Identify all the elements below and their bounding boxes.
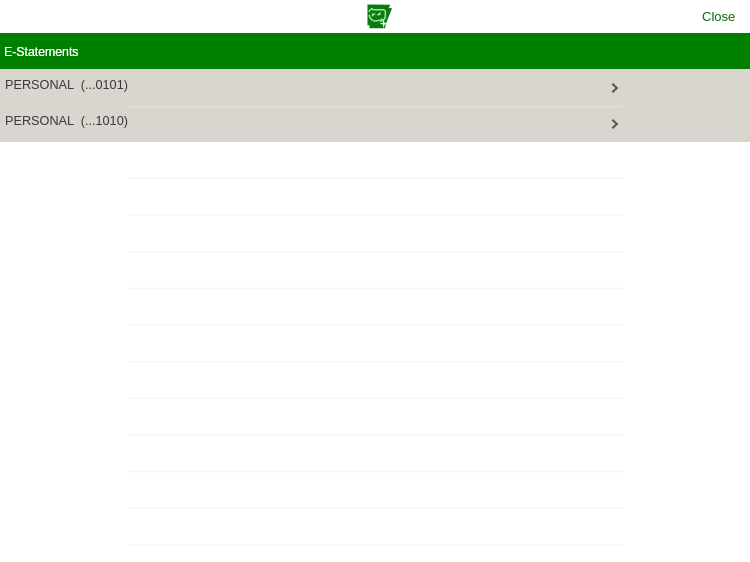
staticText: PERSONAL (...1010)	[5, 114, 128, 128]
staticText: Close	[702, 9, 736, 24]
staticText: Close	[702, 9, 736, 24]
staticText: E-Statements	[4, 45, 79, 59]
button[interactable]: PERSONAL (...0101)	[0, 70, 750, 106]
staticText: PERSONAL (...1010)	[5, 114, 128, 128]
button[interactable]: PERSONAL (...1010)	[0, 106, 750, 142]
button[interactable]: Home	[366, 4, 393, 29]
staticText: PERSONAL (...0101)	[5, 78, 128, 92]
staticText: PERSONAL (...0101)	[5, 78, 128, 92]
button[interactable]: Close	[690, 0, 749, 33]
